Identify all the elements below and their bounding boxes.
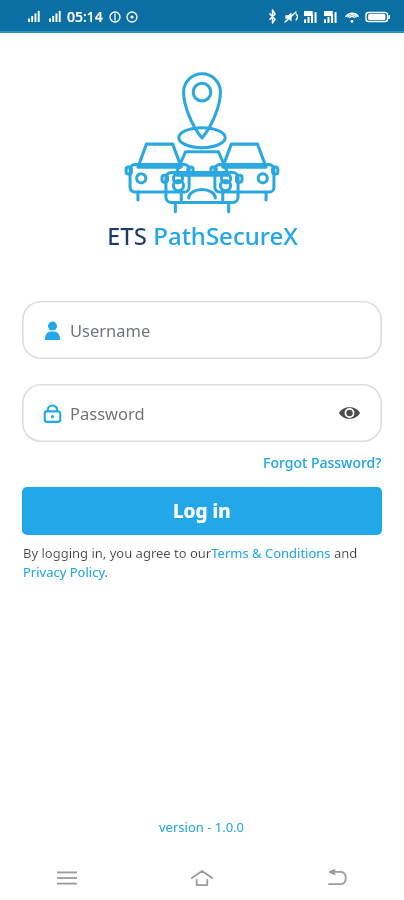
button[interactable]: Show password	[334, 398, 364, 428]
button[interactable]: Username	[22, 301, 382, 359]
staticText: version - 1.0.0	[159, 818, 245, 836]
staticText: 05:14	[67, 7, 103, 26]
staticText: Username	[70, 319, 151, 341]
button[interactable]: By logging in, you agree to ourTerms & C…	[23, 544, 381, 581]
button[interactable]: Home	[134, 856, 269, 900]
button[interactable]: Recent apps	[0, 856, 134, 900]
button[interactable]: Forgot Password?	[260, 450, 385, 475]
staticText: Log in	[173, 498, 231, 524]
button[interactable]: Back	[269, 856, 404, 900]
staticText: By logging in, you agree to ourTerms & C…	[23, 544, 381, 581]
staticText: ETS PathSecureX	[107, 219, 298, 252]
button[interactable]: Password	[22, 384, 382, 442]
button[interactable]: Log in	[22, 487, 382, 535]
staticText: Forgot Password?	[263, 453, 382, 472]
staticText: Password	[70, 402, 145, 424]
